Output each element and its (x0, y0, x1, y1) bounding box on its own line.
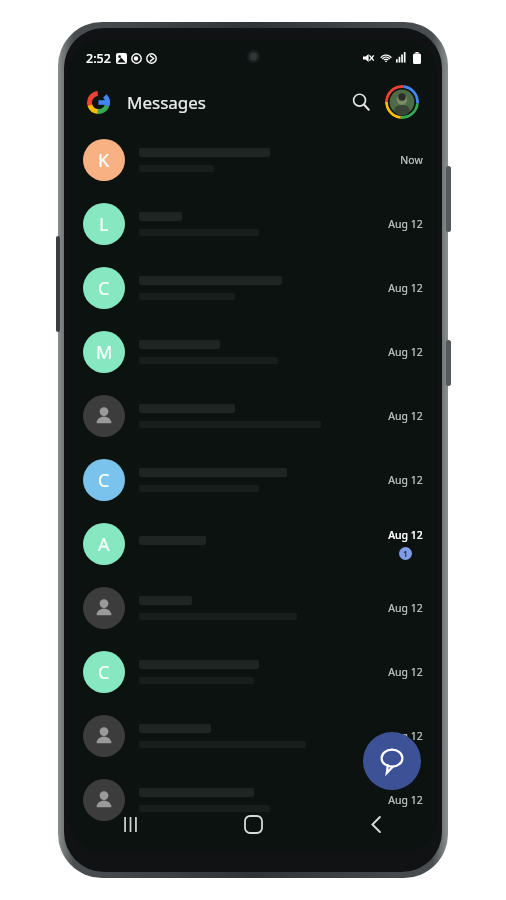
staticText: M (96, 340, 113, 365)
button[interactable]: C (69, 448, 437, 512)
staticText: 1 (403, 548, 408, 559)
button[interactable]: L (69, 192, 437, 256)
staticText: Aug 12 (388, 345, 423, 359)
button[interactable]: Home (229, 800, 277, 848)
button[interactable]: C (69, 640, 437, 704)
staticText: C (98, 276, 110, 301)
button[interactable]: Aug 12 (69, 576, 437, 640)
button[interactable]: C (69, 256, 437, 320)
button[interactable]: Account (385, 85, 419, 119)
button[interactable]: Recents (106, 800, 154, 848)
button[interactable]: M (69, 320, 437, 384)
button[interactable]: Search (343, 84, 379, 120)
staticText: Now (400, 153, 423, 167)
button[interactable]: Start chat (363, 732, 421, 790)
button[interactable]: A (69, 512, 437, 576)
staticText: L (99, 212, 109, 237)
staticText: 2:52 (86, 50, 111, 67)
button[interactable]: Aug 12 (69, 704, 437, 768)
staticText: Aug 12 (388, 665, 423, 679)
button[interactable]: K (69, 128, 437, 192)
button[interactable]: Aug 12 (69, 768, 437, 832)
staticText: Aug 12 (388, 601, 423, 615)
staticText: Aug 12 (388, 528, 423, 542)
staticText: Messages (127, 91, 207, 114)
staticText: Aug 12 (388, 217, 423, 231)
staticText: C (98, 660, 110, 685)
staticText: Aug 12 (388, 281, 423, 295)
staticText: A (98, 532, 110, 557)
staticText: Aug 12 (388, 793, 423, 807)
staticText: Aug 12 (388, 729, 423, 743)
button[interactable]: Back (352, 800, 400, 848)
staticText: Aug 12 (388, 473, 423, 487)
staticText: Aug 12 (388, 409, 423, 423)
button[interactable]: Aug 12 (69, 384, 437, 448)
staticText: C (98, 468, 110, 493)
staticText: K (98, 148, 110, 173)
